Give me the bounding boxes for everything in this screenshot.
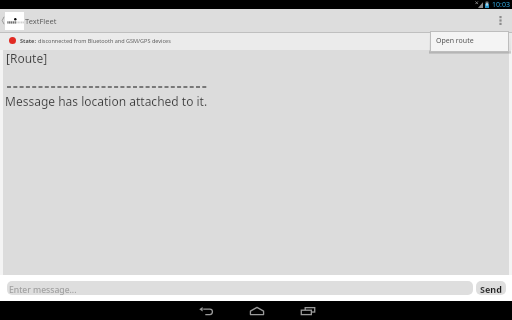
- button[interactable]: Home: [234, 301, 279, 320]
- staticText: [Route]: [6, 50, 48, 66]
- staticText: Send: [480, 283, 502, 295]
- button[interactable]: Open route: [431, 32, 508, 51]
- staticText: Open route: [436, 36, 474, 46]
- button[interactable]: Enter message...: [7, 281, 473, 295]
- staticText: Message has location attached to it.: [5, 93, 208, 109]
- button[interactable]: Back: [183, 301, 228, 320]
- staticText: 10:03: [492, 0, 510, 9]
- staticText: disconnected from Bluetooth and GSM/GPS …: [38, 37, 171, 44]
- button[interactable]: Navigate up: [0, 9, 24, 32]
- staticText: State:: [20, 37, 36, 44]
- button[interactable]: Send: [476, 281, 506, 295]
- button[interactable]: More options: [488, 9, 512, 32]
- button[interactable]: Recent apps: [285, 301, 330, 320]
- staticText: TextFleet: [25, 16, 57, 26]
- staticText: Enter message...: [9, 284, 77, 295]
